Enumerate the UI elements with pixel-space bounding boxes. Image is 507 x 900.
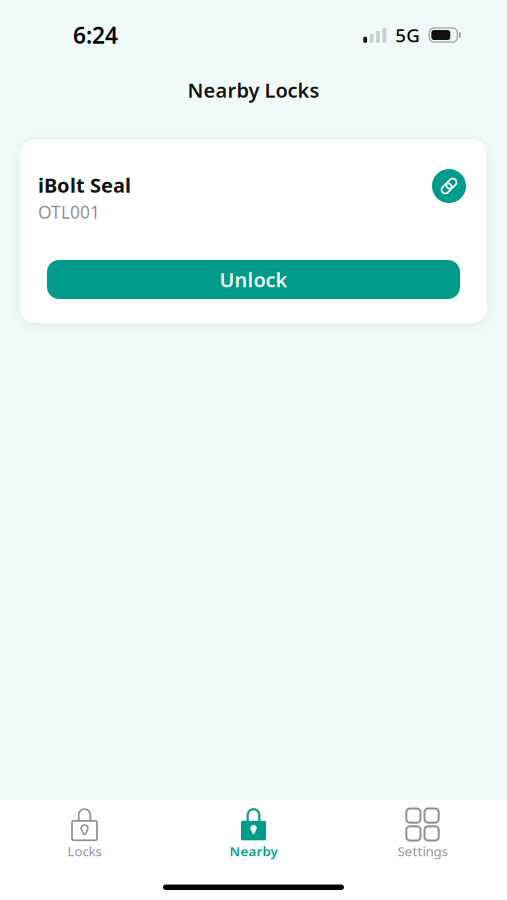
staticText: Locks: [67, 842, 101, 860]
staticText: OTL001: [38, 200, 100, 223]
staticText: 6:24: [73, 20, 118, 50]
button[interactable]: Nearby: [169, 804, 338, 854]
button[interactable]: Locks: [0, 804, 169, 854]
staticText: 5G: [395, 23, 420, 47]
button[interactable]: Settings: [338, 804, 507, 854]
button[interactable]: Unlock: [47, 260, 460, 299]
staticText: Settings: [397, 842, 447, 860]
staticText: Nearby Locks: [187, 77, 319, 103]
staticText: iBolt Seal: [38, 172, 131, 198]
staticText: Unlock: [219, 266, 287, 293]
staticText: Nearby: [229, 842, 277, 860]
button[interactable]: Connect: [432, 169, 466, 203]
